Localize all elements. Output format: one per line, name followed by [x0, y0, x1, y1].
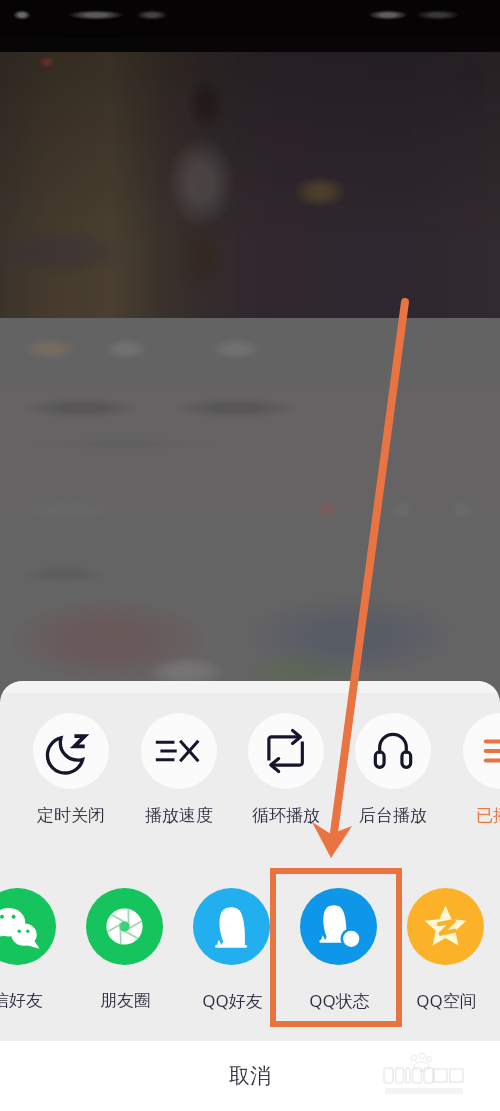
button[interactable]: 定时关闭: [33, 713, 109, 789]
staticText: 定时关闭: [37, 805, 105, 826]
button[interactable]: 循环播放: [248, 713, 324, 789]
staticText: 朋友圈: [100, 990, 151, 1011]
button[interactable]: 播放速度: [141, 713, 217, 789]
staticText: QQ好友: [202, 989, 263, 1012]
staticText: QQ空间: [416, 989, 477, 1012]
staticText: 后台播放: [359, 805, 427, 826]
button[interactable]: QQ好友: [193, 888, 270, 965]
staticText: 取消: [229, 1063, 271, 1089]
button[interactable]: 信好友: [0, 888, 56, 965]
button[interactable]: 已播放: [463, 713, 500, 789]
staticText: 已播放: [476, 805, 500, 826]
staticText: 信好友: [0, 990, 43, 1011]
button[interactable]: QQ空间: [407, 888, 484, 965]
button[interactable]: QQ状态: [300, 888, 377, 965]
button[interactable]: 后台播放: [355, 713, 431, 789]
staticText: 播放速度: [145, 805, 213, 826]
staticText: 循环播放: [252, 805, 320, 826]
button[interactable]: 取消: [0, 1041, 500, 1111]
staticText: QQ状态: [309, 989, 370, 1012]
button[interactable]: 朋友圈: [86, 888, 163, 965]
